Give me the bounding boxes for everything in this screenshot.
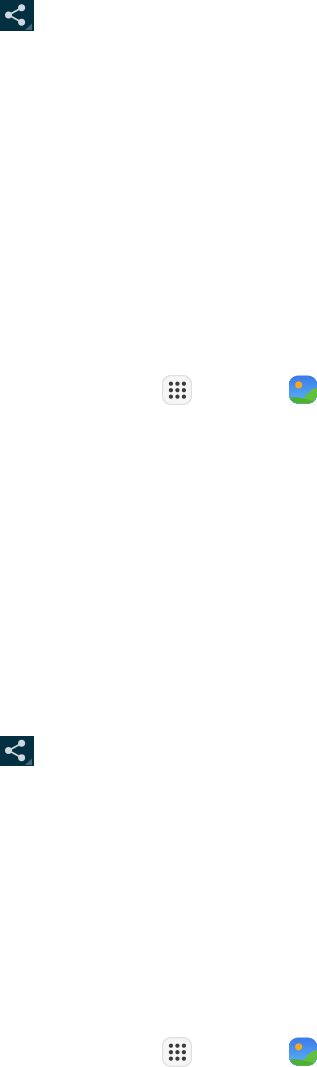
button[interactable]: Photos <box>289 1037 317 1065</box>
button[interactable]: Apps <box>162 375 192 405</box>
button[interactable]: Share <box>0 736 34 766</box>
button[interactable]: Photos <box>289 375 317 403</box>
button[interactable]: Apps <box>162 1037 192 1067</box>
button[interactable]: Share <box>0 0 34 31</box>
